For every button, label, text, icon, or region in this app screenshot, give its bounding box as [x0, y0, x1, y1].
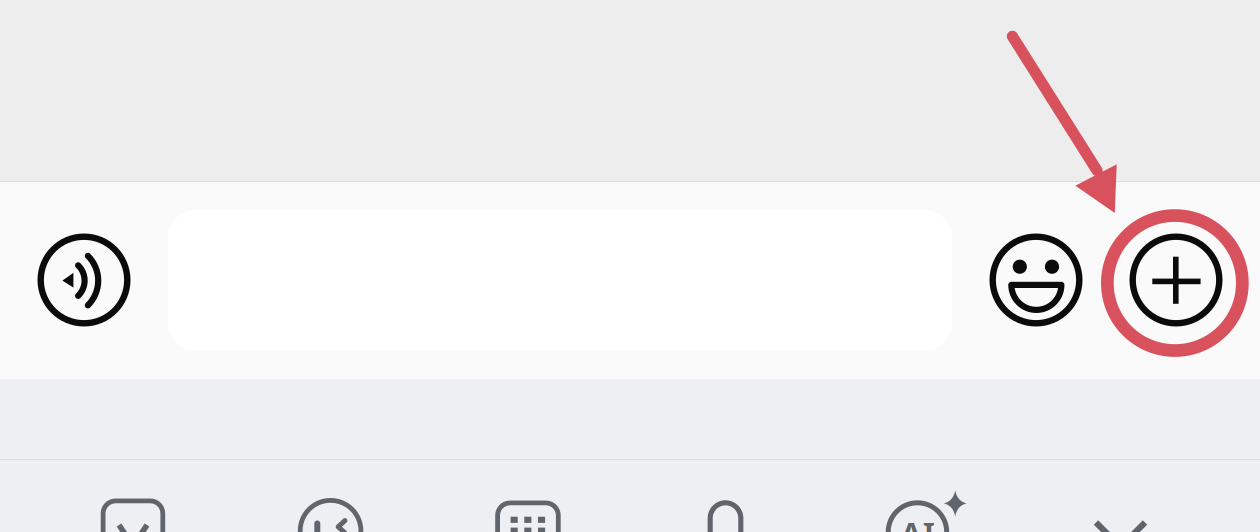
button[interactable]: Keypad	[429, 497, 627, 532]
button[interactable]: Attach file	[627, 497, 824, 532]
button[interactable]: Stickers	[990, 234, 1082, 326]
button[interactable]: Stickers	[232, 497, 429, 532]
button[interactable]: Apps	[34, 497, 232, 532]
button[interactable]: Meta AI	[824, 497, 1022, 532]
staticText: AI	[899, 511, 935, 532]
button[interactable]: Voice message	[38, 234, 130, 326]
button[interactable]: Collapse tray	[1022, 497, 1219, 532]
button[interactable]: Add attachment	[1130, 234, 1222, 326]
